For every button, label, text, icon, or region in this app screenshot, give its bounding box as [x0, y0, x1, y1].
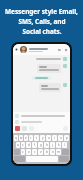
button[interactable]: r: [29, 135, 33, 141]
button[interactable]: g: [38, 142, 43, 148]
button[interactable]: d: [26, 142, 31, 148]
staticText: SMS, Calls, and: [18, 17, 66, 26]
staticText: g: [40, 143, 42, 147]
staticText: i: [54, 136, 55, 140]
button[interactable]: m: [56, 149, 61, 155]
other: Back: [15, 48, 18, 51]
button[interactable]: z: [21, 149, 25, 155]
button[interactable]: Call: [64, 48, 68, 52]
staticText: v: [40, 150, 42, 154]
staticText: l: [64, 143, 65, 147]
staticText: x: [28, 150, 30, 154]
button[interactable]: i: [52, 135, 57, 141]
button[interactable]: t: [34, 135, 39, 141]
staticText: d: [28, 143, 30, 147]
button[interactable]: Send: [63, 126, 68, 131]
staticText: o: [60, 136, 62, 140]
staticText: m: [57, 150, 60, 154]
button[interactable]: o: [58, 135, 63, 141]
staticText: y: [42, 136, 44, 140]
button[interactable]: s: [21, 142, 25, 148]
staticText: h: [46, 143, 48, 147]
button[interactable]: j: [50, 142, 55, 148]
staticText: a: [17, 143, 19, 147]
button[interactable]: p: [64, 135, 69, 141]
button[interactable]: Back: [13, 44, 70, 55]
button[interactable]: e: [24, 135, 28, 141]
button[interactable]: c: [32, 149, 37, 155]
button[interactable]: x: [26, 149, 31, 155]
staticText: Social chats.: [22, 27, 62, 36]
button[interactable]: Attach: [15, 126, 20, 131]
staticText: z: [22, 150, 24, 154]
staticText: b: [46, 150, 48, 154]
staticText: p: [66, 136, 68, 140]
staticText: q: [15, 136, 17, 140]
button[interactable]: k: [56, 142, 61, 148]
staticText: k: [58, 143, 60, 147]
staticText: s: [22, 143, 24, 147]
button[interactable]: Add: [29, 126, 34, 131]
button[interactable]: [32, 76, 51, 80]
staticText: j: [52, 143, 53, 147]
staticText: r: [30, 136, 32, 140]
staticText: Messenger style Email,: [5, 7, 78, 16]
staticText: c: [34, 150, 36, 154]
button[interactable]: w: [19, 135, 23, 141]
staticText: e: [25, 136, 27, 140]
button[interactable]: h: [44, 142, 49, 148]
button[interactable]: u: [46, 135, 51, 141]
staticText: n: [52, 150, 54, 154]
button[interactable]: a: [16, 142, 20, 148]
button[interactable]: [39, 83, 61, 92]
button[interactable]: [37, 64, 61, 73]
staticText: u: [48, 136, 50, 140]
staticText: f: [34, 143, 36, 147]
button[interactable]: n: [50, 149, 55, 155]
button[interactable]: Video call: [58, 48, 62, 52]
button[interactable]: q: [14, 135, 18, 141]
button[interactable]: l: [62, 142, 67, 148]
button[interactable]: v: [38, 149, 43, 155]
button[interactable]: y: [40, 135, 45, 141]
button[interactable]: f: [32, 142, 37, 148]
staticText: t: [36, 136, 38, 140]
staticText: w: [20, 136, 23, 140]
button[interactable]: b: [44, 149, 49, 155]
